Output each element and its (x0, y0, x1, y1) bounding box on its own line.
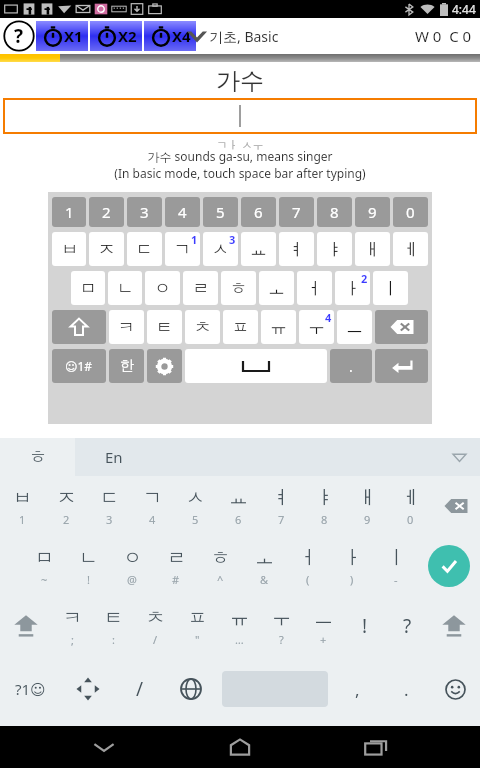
button[interactable]: ㅁ (22, 536, 66, 596)
button[interactable]: 0 (393, 197, 428, 227)
button[interactable]: ㄴ (66, 536, 110, 596)
button[interactable]: ㅋ (109, 310, 144, 344)
button[interactable]: ㅏ (330, 536, 374, 596)
button[interactable]: ㅜ (299, 310, 334, 344)
button[interactable]: Space (185, 349, 327, 383)
button[interactable]: ㅠ (218, 596, 260, 656)
button[interactable]: Change language (164, 656, 218, 722)
button[interactable]: Move cursor (60, 656, 116, 722)
button[interactable]: Shift (52, 310, 106, 344)
button[interactable]: ㅔ (389, 476, 432, 536)
button[interactable]: / (116, 656, 164, 722)
button[interactable]: ㄱ (131, 476, 174, 536)
button[interactable]: ㅑ (303, 476, 346, 536)
staticText: ㅑ (315, 486, 334, 510)
button[interactable]: 4 (165, 197, 200, 227)
button[interactable]: 3 (127, 197, 162, 227)
button[interactable]: 9 (355, 197, 390, 227)
button[interactable]: ㅕ (279, 232, 314, 266)
button[interactable]: X2 (90, 21, 142, 51)
button[interactable]: . (330, 349, 372, 383)
button[interactable]: ㅏ (335, 271, 370, 305)
button[interactable]: Backspace (432, 476, 480, 536)
button[interactable]: ㅡ (337, 310, 372, 344)
button[interactable]: ㅊ (185, 310, 220, 344)
button[interactable]: ㅗ (259, 271, 294, 305)
button[interactable]: ㅐ (355, 232, 390, 266)
button[interactable]: ㅊ (134, 596, 176, 656)
button[interactable]: Help (3, 20, 35, 52)
button[interactable]: ㄹ (183, 271, 218, 305)
button[interactable]: 2 (89, 197, 124, 227)
button[interactable]: ㅇ (145, 271, 180, 305)
button[interactable]: ㅌ (147, 310, 182, 344)
button[interactable]: ㅎ (221, 271, 256, 305)
staticText: En (105, 447, 123, 467)
button[interactable]: . (382, 656, 430, 722)
button[interactable]: ㄹ (154, 536, 198, 596)
button[interactable]: Home (208, 726, 272, 768)
button[interactable]: ㅎ (198, 536, 242, 596)
button[interactable]: ㅓ (286, 536, 330, 596)
button[interactable]: ㄴ (108, 271, 142, 305)
button[interactable]: ㅛ (241, 232, 276, 266)
button[interactable]: ㅌ (93, 596, 134, 656)
button[interactable]: ㅜ (260, 596, 302, 656)
button[interactable]: ㅎ (0, 438, 75, 476)
button[interactable]: ㄱ (165, 232, 200, 266)
button[interactable]: ?1☺ (0, 656, 60, 722)
button[interactable] (3, 98, 477, 134)
button[interactable]: Emoji (430, 656, 480, 722)
button[interactable]: Settings (147, 349, 182, 383)
button[interactable]: W 0 C 0 (415, 26, 472, 46)
button[interactable]: Enter (375, 349, 428, 383)
button[interactable]: ㄷ (88, 476, 131, 536)
button[interactable]: ㅡ (302, 596, 344, 656)
button[interactable]: Shift (0, 596, 52, 656)
button[interactable]: ㅐ (346, 476, 389, 536)
button[interactable]: ㅕ (260, 476, 303, 536)
button[interactable]: Done (418, 536, 480, 596)
button[interactable]: ☺1# (52, 349, 106, 383)
button[interactable]: ㅂ (0, 476, 44, 536)
staticText: ㅣ (387, 546, 406, 570)
button[interactable]: 7 (279, 197, 314, 227)
button[interactable]: X4 (144, 21, 196, 51)
button[interactable]: X1 (36, 21, 88, 51)
button[interactable]: Back (72, 726, 136, 768)
button[interactable]: ㅍ (223, 310, 258, 344)
button[interactable]: ㅅ (174, 476, 217, 536)
button[interactable]: Shift (428, 596, 480, 656)
button[interactable]: , (332, 656, 382, 722)
button[interactable]: 기초, Basic (185, 26, 279, 46)
staticText: X2 (118, 26, 137, 46)
button[interactable]: ㄷ (127, 232, 162, 266)
button[interactable]: ㅗ (242, 536, 286, 596)
button[interactable]: En (75, 438, 480, 476)
button[interactable]: ㅣ (374, 536, 418, 596)
button[interactable]: ㅇ (110, 536, 154, 596)
button[interactable]: 5 (203, 197, 238, 227)
button[interactable]: ㅣ (373, 271, 408, 305)
button[interactable]: ㅅ (203, 232, 238, 266)
button[interactable]: ㅈ (89, 232, 124, 266)
button[interactable]: ㅔ (393, 232, 428, 266)
button[interactable]: ㅈ (44, 476, 88, 536)
button[interactable]: ㅋ (52, 596, 93, 656)
button[interactable]: Backspace (375, 310, 428, 344)
button[interactable]: Recent apps (344, 726, 408, 768)
button[interactable]: ? (386, 596, 428, 656)
button[interactable]: 한 (109, 349, 144, 383)
button[interactable]: ㅁ (71, 271, 105, 305)
button[interactable]: 6 (241, 197, 276, 227)
button[interactable]: 8 (317, 197, 352, 227)
button[interactable]: ㅠ (261, 310, 296, 344)
button[interactable]: ! (344, 596, 386, 656)
button[interactable]: ㅑ (317, 232, 352, 266)
button[interactable]: ㅓ (297, 271, 332, 305)
button[interactable]: ㅛ (217, 476, 260, 536)
button[interactable]: 1 (52, 197, 86, 227)
button[interactable]: ㅂ (52, 232, 86, 266)
button[interactable]: ㅍ (176, 596, 218, 656)
